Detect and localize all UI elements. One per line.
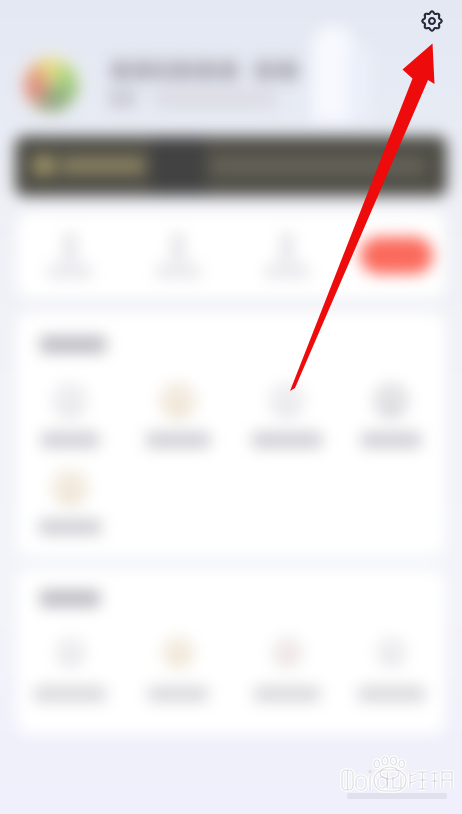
- button[interactable]: Menu item: [164, 638, 193, 667]
- button[interactable]: Menu item: [374, 384, 408, 418]
- button[interactable]: [15, 136, 447, 196]
- button[interactable]: Menu item: [270, 384, 304, 418]
- button[interactable]: Stat: [57, 233, 83, 259]
- button[interactable]: Menu item: [53, 471, 87, 505]
- button[interactable]: [360, 237, 433, 274]
- button[interactable]: Menu item: [56, 638, 85, 667]
- button[interactable]: Menu item: [161, 384, 195, 418]
- button[interactable]: Stat: [274, 233, 300, 259]
- button[interactable]: Menu item: [53, 384, 87, 418]
- button[interactable]: Menu item: [377, 638, 406, 667]
- button[interactable]: Settings: [418, 7, 446, 35]
- button[interactable]: Menu item: [273, 638, 302, 667]
- button[interactable]: Stat: [165, 233, 191, 259]
